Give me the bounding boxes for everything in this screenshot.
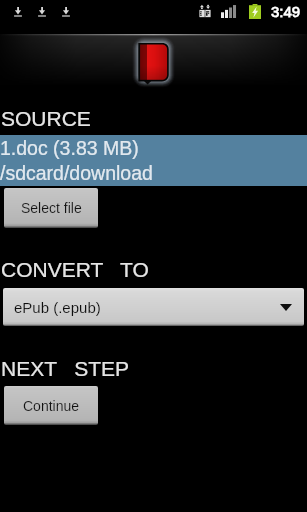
staticText: SOURCE <box>1 107 91 130</box>
button[interactable]: Select file <box>4 188 98 228</box>
staticText: CONVERT TO <box>1 258 149 281</box>
other: Open dropdown <box>280 304 292 311</box>
other: Download in progress <box>11 4 25 19</box>
other: Download in progress <box>35 4 49 19</box>
staticText: 3:49 <box>271 3 301 20</box>
button[interactable]: Continue <box>4 386 98 425</box>
other: Download in progress <box>59 4 73 19</box>
staticText: Select file <box>21 200 82 216</box>
staticText: 1.doc (3.83 MB) <box>0 137 139 159</box>
staticText: NEXT STEP <box>1 357 129 380</box>
button[interactable]: ePub (.epub) <box>3 288 304 326</box>
staticText: /sdcard/download <box>0 162 153 184</box>
staticText: ePub (.epub) <box>14 299 101 316</box>
staticText: Continue <box>23 398 80 414</box>
button[interactable]: 1.doc (3.83 MB) <box>0 135 307 186</box>
